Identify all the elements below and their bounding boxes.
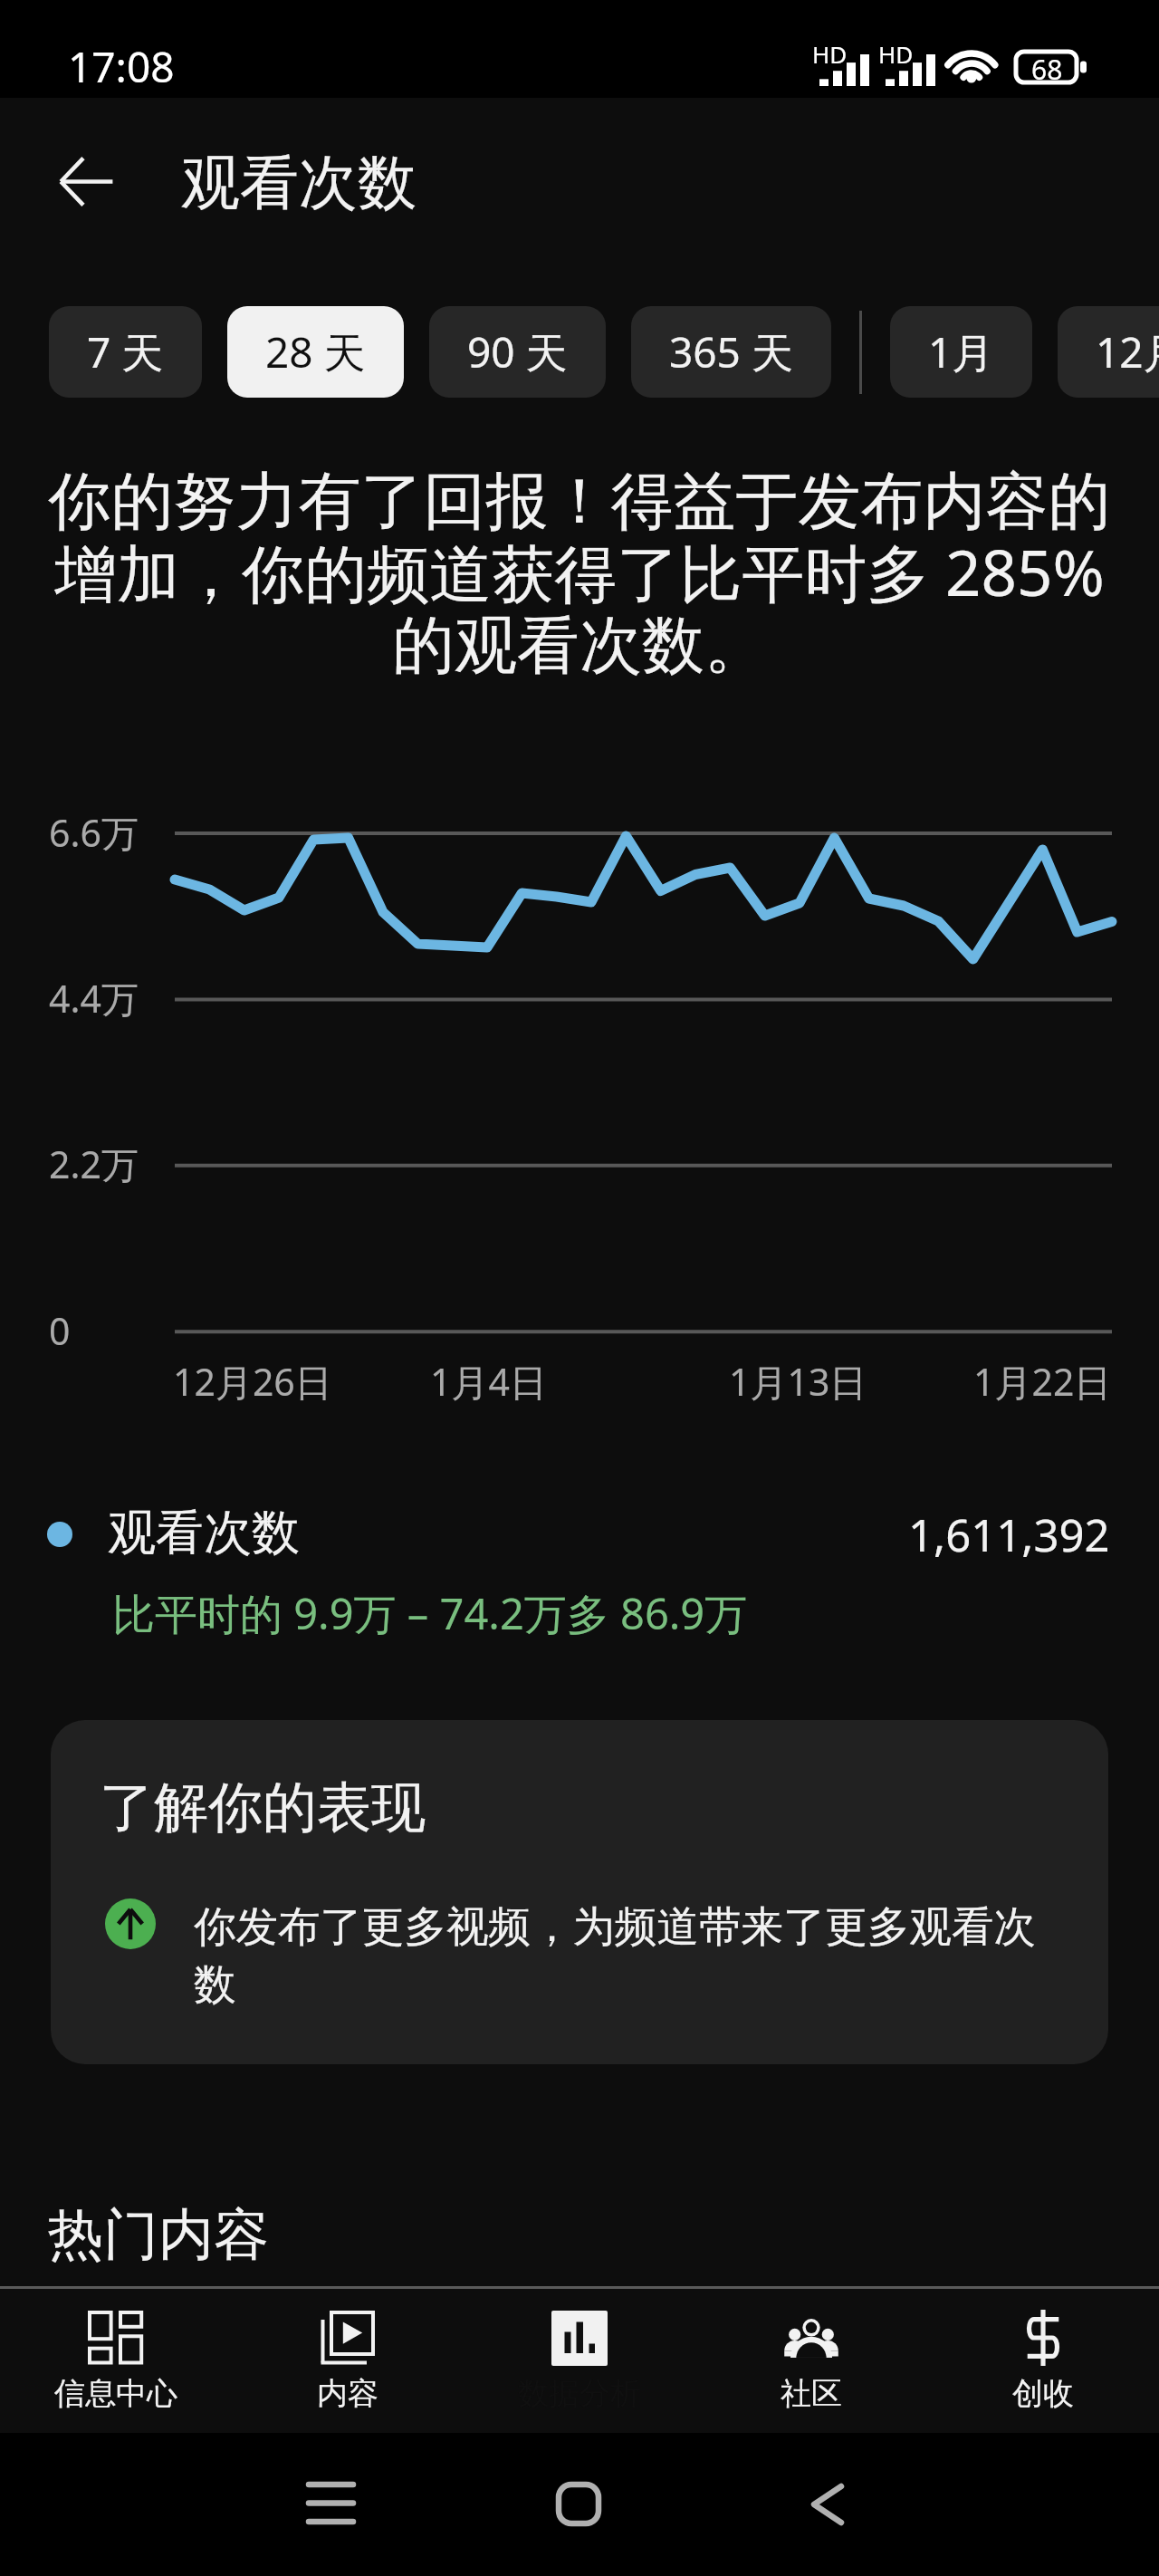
button[interactable]: 1月 [890,306,1032,398]
button[interactable]: 90 天 [429,306,606,398]
button[interactable]: 28 天 [227,306,404,398]
button[interactable]: 12月 [1058,306,1159,398]
button[interactable]: Back [34,129,139,234]
staticText: 你发布了更多视频，为频道带来了更多观看次数 [194,1900,1054,2012]
button[interactable]: 内容 [232,2289,464,2433]
button[interactable]: 创收 [927,2289,1159,2433]
staticText: 你的努力有了回报！得益于发布内容的增加，你的频道获得了比平时多 285% 的观看… [43,463,1116,686]
button[interactable]: 了解你的表现 [51,1720,1108,2064]
staticText: 热门内容 [48,2200,269,2270]
staticText: 17:08 [68,38,175,95]
staticText: 7 天 [87,323,164,380]
staticText: 4.4万 [49,973,139,1024]
staticText: 28 天 [265,323,366,380]
staticText: 365 天 [669,323,793,380]
staticText: 社区 [781,2374,842,2413]
staticText: 12月26日 [173,1356,332,1407]
staticText: 了解你的表现 [100,1773,426,1842]
staticText: 12月 [1096,323,1159,380]
staticText: 信息中心 [54,2374,177,2413]
staticText: 1月4日 [430,1356,547,1407]
staticText: 90 天 [467,323,568,380]
staticText: 创收 [1012,2374,1074,2413]
staticText: 0 [49,1305,71,1356]
staticText: 观看次数 [108,1503,300,1563]
staticText: 2.2万 [49,1139,139,1189]
staticText: 1月13日 [729,1356,867,1407]
staticText: 1,611,392 [908,1504,1110,1565]
button[interactable]: Back [773,2454,882,2553]
staticText: 内容 [317,2374,378,2413]
staticText: HD [878,38,914,70]
button[interactable]: 数据分析 [464,2289,695,2433]
staticText: 比平时的 9.9万 – 74.2万多 86.9万 [112,1584,748,1642]
button[interactable]: 信息中心 [0,2289,232,2433]
staticText: 观看次数 [181,146,417,220]
staticText: 1月 [928,323,994,380]
button[interactable]: 7 天 [49,306,202,398]
staticText: 1月22日 [973,1356,1112,1407]
staticText: 6.6万 [49,807,139,858]
button[interactable]: Home [524,2454,633,2553]
staticText: HD [812,38,848,70]
button[interactable]: 社区 [695,2289,927,2433]
button[interactable]: Recent apps [276,2454,385,2553]
staticText: 68 [1031,51,1063,85]
button[interactable]: 365 天 [631,306,831,398]
